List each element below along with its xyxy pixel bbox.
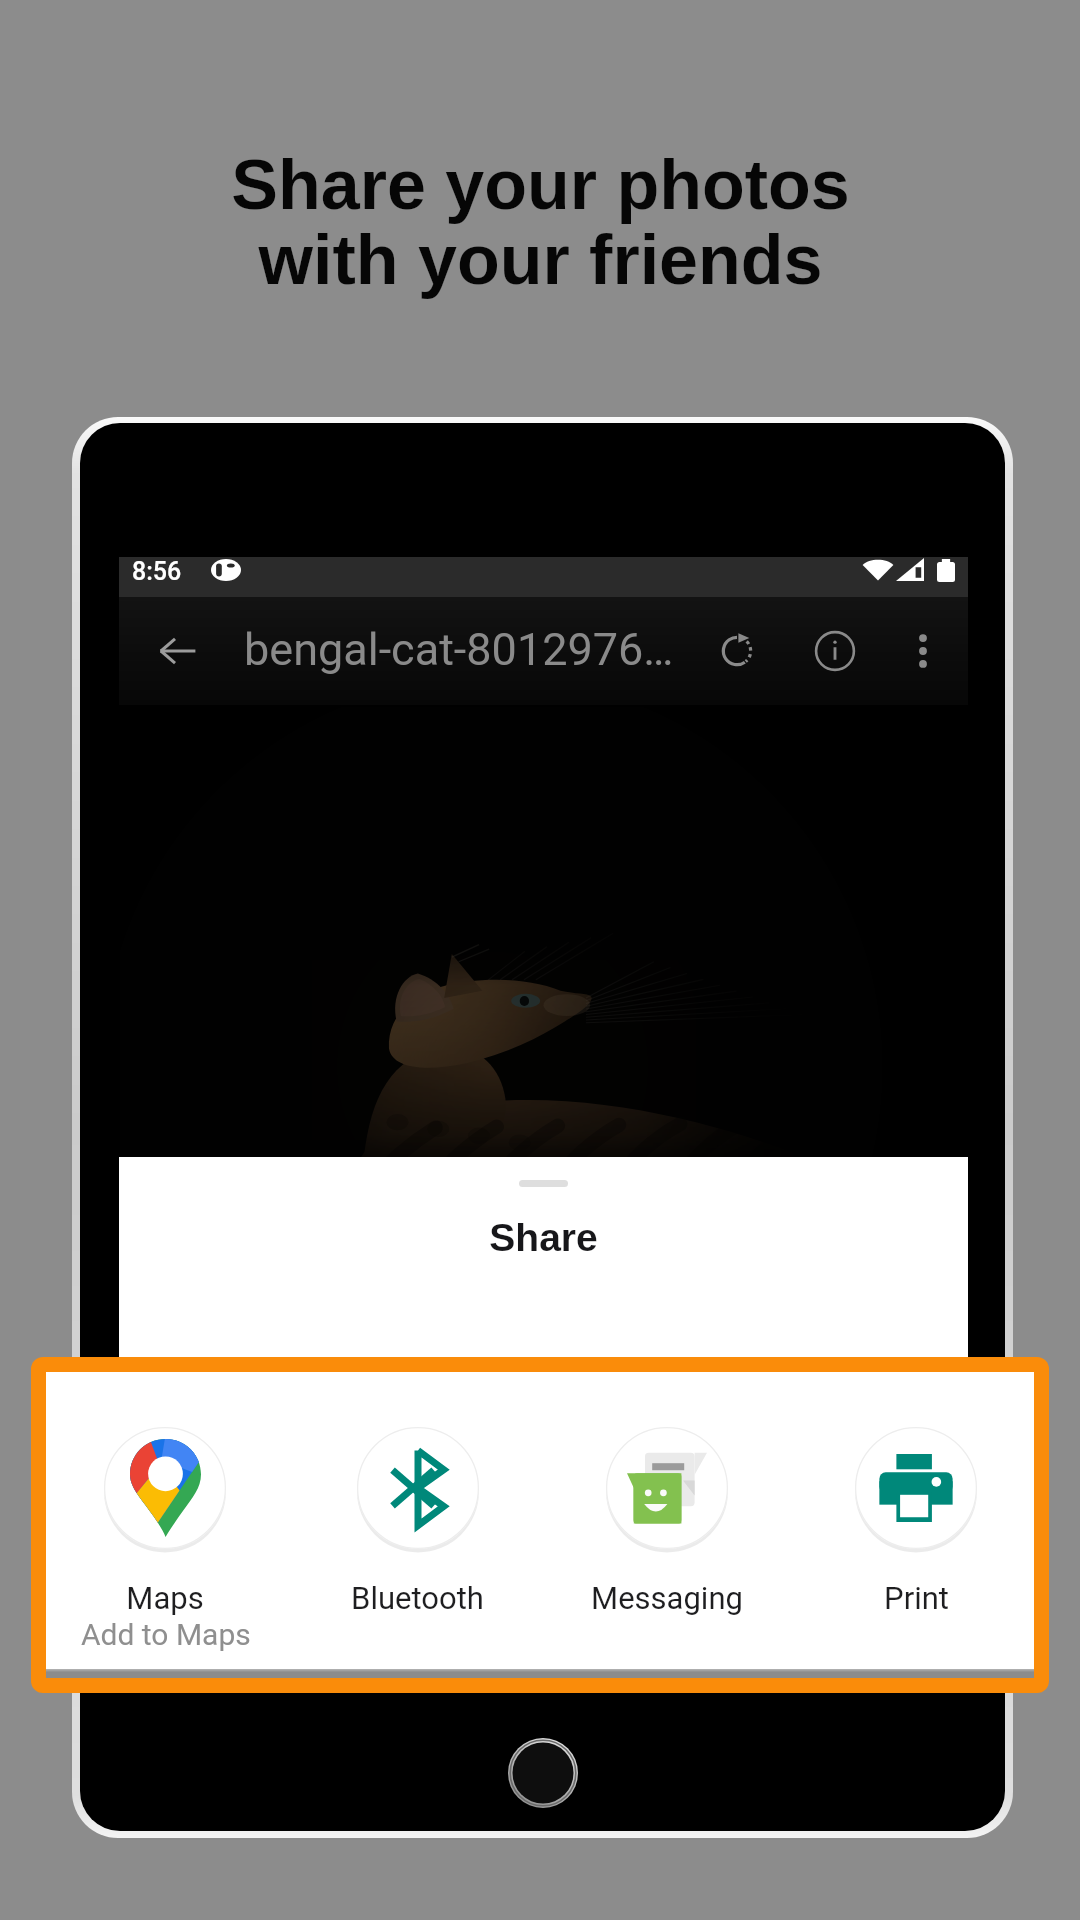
button[interactable]: Bluetooth: [305, 1406, 529, 1621]
staticText: Maps: [126, 1580, 204, 1616]
button[interactable]: Maps: [53, 1406, 277, 1621]
staticText: Add to Maps: [81, 1617, 251, 1652]
staticText: 8:56: [132, 557, 182, 586]
staticText: Share your photos with your friends: [231, 146, 850, 299]
button[interactable]: Info: [795, 611, 875, 691]
button[interactable]: More options: [883, 611, 963, 691]
button[interactable]: Back: [137, 611, 217, 691]
button[interactable]: Print: [804, 1406, 1028, 1621]
staticText: Messaging: [591, 1580, 743, 1616]
button[interactable]: Rotate: [697, 611, 777, 691]
staticText: Print: [884, 1580, 949, 1616]
button[interactable]: Messaging: [555, 1406, 779, 1621]
staticText: Bluetooth: [351, 1580, 484, 1616]
staticText: Share: [119, 1216, 968, 1260]
button[interactable]: Home: [508, 1738, 578, 1808]
staticText: bengal-cat-8012976…: [244, 623, 674, 676]
